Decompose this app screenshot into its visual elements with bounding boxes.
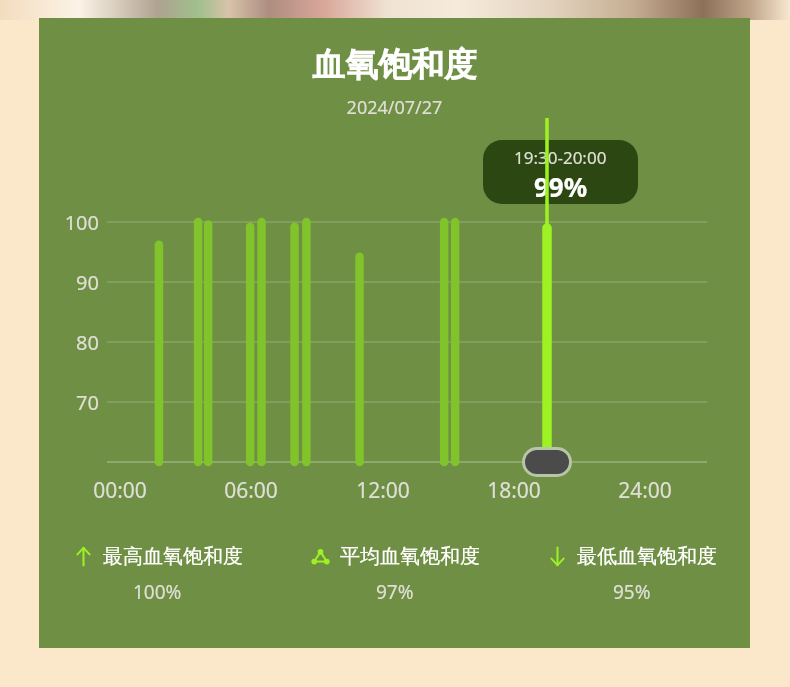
other: 最低血氧饱和度 <box>547 546 568 567</box>
button[interactable]: 平均血氧饱和度 <box>276 544 513 605</box>
staticText: 100 <box>47 209 99 236</box>
staticText: 97% <box>376 579 414 605</box>
staticText: 最低血氧饱和度 <box>577 544 717 569</box>
other: 平均血氧饱和度 <box>310 546 331 567</box>
staticText: 99% <box>534 169 588 204</box>
button[interactable]: 19:30-20:00 <box>483 140 638 204</box>
staticText: 血氧饱和度 <box>39 44 750 86</box>
button[interactable]: 最低血氧饱和度 <box>513 544 750 605</box>
staticText: 18:00 <box>469 476 559 505</box>
other: 最高血氧饱和度 <box>73 546 94 567</box>
staticText: 70 <box>47 389 99 416</box>
staticText: 00:00 <box>75 476 165 505</box>
staticText: 80 <box>47 329 99 356</box>
staticText: 100% <box>133 579 182 605</box>
staticText: 95% <box>613 579 651 605</box>
button[interactable]: 最高血氧饱和度 <box>39 544 276 605</box>
staticText: 2024/07/27 <box>39 95 750 120</box>
staticText: 平均血氧饱和度 <box>340 544 480 569</box>
staticText: 19:30-20:00 <box>514 146 607 169</box>
staticText: 最高血氧饱和度 <box>103 544 243 569</box>
staticText: 12:00 <box>338 476 428 505</box>
staticText: 24:00 <box>600 476 690 505</box>
staticText: 90 <box>47 269 99 296</box>
staticText: 06:00 <box>206 476 296 505</box>
